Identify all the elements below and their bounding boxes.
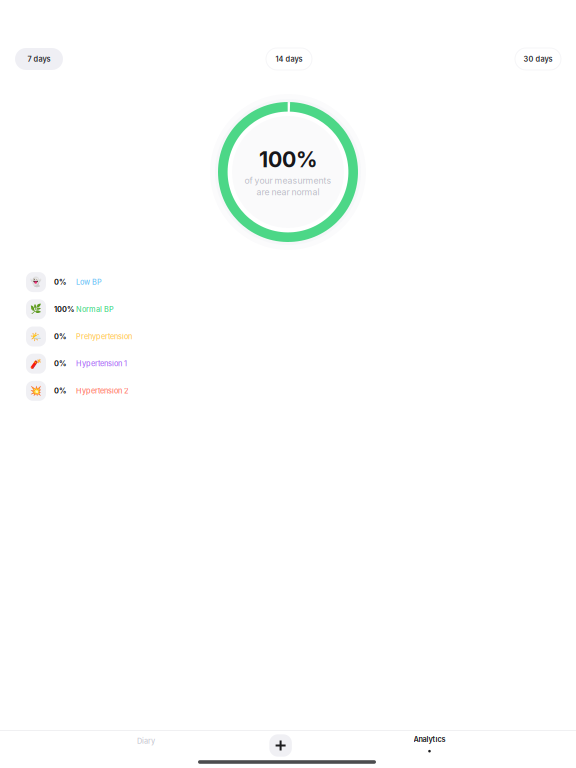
staticText: 7 days	[27, 55, 50, 63]
button[interactable]: 👻	[0, 268, 576, 296]
staticText: are near normal	[256, 187, 319, 197]
staticText: 🧨	[30, 358, 42, 369]
staticText: 0%	[54, 386, 66, 395]
staticText: 14 days	[275, 55, 302, 63]
staticText: Prehypertension	[76, 332, 132, 341]
button[interactable]: 30 days	[515, 48, 561, 70]
button[interactable]: 🧨	[0, 350, 576, 377]
staticText: Low BP	[76, 278, 102, 287]
button[interactable]: Add measurement	[264, 728, 298, 762]
staticText: 🌿	[30, 304, 42, 315]
staticText: Diary	[137, 737, 155, 745]
button[interactable]: 14 days	[266, 48, 312, 70]
staticText: 0%	[54, 359, 66, 368]
staticText: 0%	[54, 332, 66, 341]
button[interactable]: Diary	[98, 728, 194, 754]
staticText: Analytics	[413, 735, 445, 744]
staticText: Hypertension 1	[76, 359, 127, 368]
staticText: Hypertension 2	[76, 386, 129, 395]
staticText: 100%	[259, 147, 317, 172]
button[interactable]: 🌤️	[0, 323, 576, 350]
staticText: 0%	[54, 278, 66, 287]
button[interactable]: 💥	[0, 377, 576, 404]
staticText: 100%	[54, 305, 74, 314]
staticText: 👻	[30, 277, 42, 287]
staticText: 🌤️	[30, 331, 42, 342]
button[interactable]: 7 days	[15, 48, 63, 70]
button[interactable]: 🌿	[0, 296, 576, 323]
staticText: of your measurments	[244, 175, 331, 186]
staticText: 30 days	[523, 55, 552, 63]
staticText: Normal BP	[76, 305, 114, 314]
staticText: 💥	[30, 385, 42, 396]
button[interactable]: Analytics	[381, 735, 477, 761]
